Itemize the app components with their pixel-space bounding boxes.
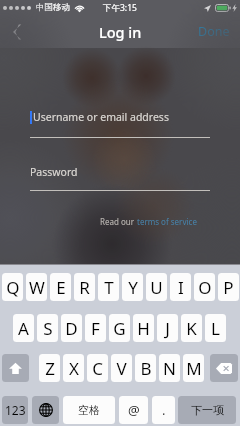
button[interactable]: @ <box>119 396 148 424</box>
button[interactable]: Shift <box>2 354 29 382</box>
staticText: 123 <box>5 402 26 418</box>
staticText: 空格 <box>78 403 100 417</box>
button[interactable]: D <box>61 314 82 342</box>
button[interactable]: I <box>170 273 191 301</box>
staticText: U <box>150 276 163 299</box>
button[interactable]: E <box>50 273 71 301</box>
button[interactable]: Backspace <box>210 354 238 382</box>
staticText: Password <box>30 165 78 179</box>
staticText: Username or email address <box>33 110 169 124</box>
button[interactable]: Z <box>39 354 60 382</box>
staticText: D <box>65 317 78 340</box>
staticText: F <box>91 317 100 340</box>
staticText: @ <box>128 401 140 419</box>
button[interactable]: M <box>183 354 204 382</box>
staticText: V <box>116 357 127 380</box>
staticText: O <box>198 276 212 299</box>
button[interactable]: 空格 <box>63 396 115 424</box>
staticText: L <box>211 317 220 340</box>
button[interactable]: H <box>133 314 154 342</box>
button[interactable]: L <box>205 314 226 342</box>
button[interactable]: Switch keyboard <box>32 396 59 424</box>
staticText: Y <box>128 276 138 299</box>
staticText: A <box>18 317 29 340</box>
staticText: C <box>92 357 103 380</box>
button[interactable]: K <box>181 314 202 342</box>
button[interactable]: Back <box>0 15 33 48</box>
staticText: . <box>162 401 166 419</box>
button[interactable]: Q <box>2 273 23 301</box>
button[interactable]: R <box>74 273 95 301</box>
button[interactable]: O <box>194 273 215 301</box>
button[interactable]: Y <box>122 273 143 301</box>
staticText: R <box>79 276 90 299</box>
button[interactable]: . <box>152 396 175 424</box>
staticText: I <box>178 276 184 299</box>
button[interactable]: 123 <box>2 396 28 424</box>
button[interactable]: 下一项 <box>178 396 236 424</box>
button[interactable]: N <box>159 354 180 382</box>
button[interactable]: A <box>13 314 34 342</box>
staticText: E <box>56 276 66 299</box>
staticText: 中国移动 <box>36 2 70 13</box>
button[interactable]: T <box>98 273 119 301</box>
staticText: Z <box>45 357 55 380</box>
button[interactable]: Done <box>198 15 230 48</box>
button[interactable]: S <box>37 314 58 342</box>
staticText: N <box>163 357 176 380</box>
button[interactable]: U <box>146 273 167 301</box>
button[interactable]: terms of service <box>137 216 197 227</box>
staticText: B <box>140 357 152 380</box>
staticText: 下午3:15 <box>103 2 137 14</box>
staticText: X <box>69 357 79 380</box>
staticText: Read our <box>100 216 137 227</box>
staticText: W <box>29 276 45 299</box>
button[interactable]: J <box>157 314 178 342</box>
button[interactable]: B <box>135 354 156 382</box>
staticText: T <box>104 276 114 299</box>
staticText: Done <box>198 23 230 40</box>
button[interactable]: C <box>87 354 108 382</box>
button[interactable]: P <box>218 273 239 301</box>
staticText: terms of service <box>137 216 197 227</box>
button[interactable]: X <box>63 354 84 382</box>
button[interactable]: V <box>111 354 132 382</box>
staticText: Log in <box>99 22 142 42</box>
staticText: 下一项 <box>191 403 224 417</box>
button[interactable]: W <box>26 273 47 301</box>
staticText: J <box>165 317 170 340</box>
button[interactable]: G <box>109 314 130 342</box>
staticText: M <box>186 357 202 380</box>
staticText: K <box>186 317 197 340</box>
staticText: Q <box>6 276 20 299</box>
staticText: S <box>43 317 53 340</box>
staticText: G <box>113 317 126 340</box>
staticText: H <box>137 317 150 340</box>
staticText: P <box>223 276 234 299</box>
button[interactable]: F <box>85 314 106 342</box>
